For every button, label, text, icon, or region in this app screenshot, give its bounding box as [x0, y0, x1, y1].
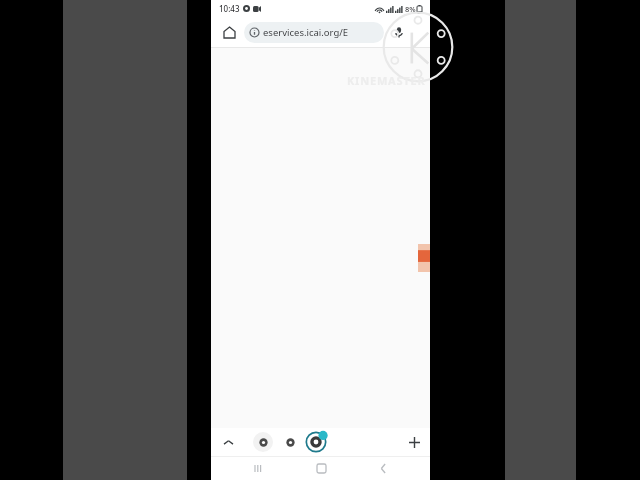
button[interactable]: Active tab: [305, 431, 327, 453]
button[interactable]: Expand toolbar: [219, 433, 237, 451]
button[interactable]: Home: [306, 456, 336, 480]
button[interactable]: eservices.icai.org/E: [244, 22, 384, 43]
button[interactable]: Back: [368, 456, 398, 480]
staticText: 8%: [405, 4, 416, 14]
button[interactable]: Voice search: [388, 21, 410, 43]
button[interactable]: Tab: [281, 433, 299, 451]
button[interactable]: Home: [217, 20, 241, 44]
staticText: KINEMASTER: [347, 73, 426, 88]
staticText: 10:43: [219, 3, 240, 14]
button[interactable]: Tab: [253, 432, 273, 452]
button[interactable]: New tab: [404, 432, 424, 452]
button[interactable]: Recent apps: [243, 456, 273, 480]
staticText: eservices.icai.org/E: [263, 26, 349, 39]
